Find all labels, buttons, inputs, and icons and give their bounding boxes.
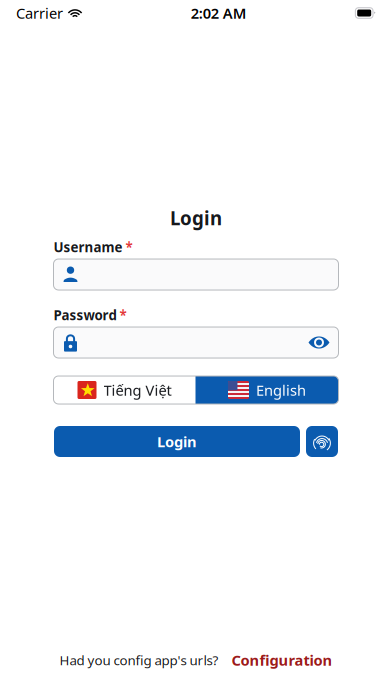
staticText: Username <box>53 238 122 256</box>
button[interactable]: Configuration <box>231 650 332 670</box>
staticText: Login <box>170 206 222 230</box>
staticText: * <box>125 238 132 256</box>
staticText: 2:02 AM <box>191 3 247 23</box>
staticText: Had you config app's urls? <box>59 651 218 669</box>
staticText: * <box>119 306 126 324</box>
staticText: Configuration <box>231 650 332 670</box>
staticText: English <box>256 380 306 400</box>
button[interactable]: English <box>195 376 338 404</box>
staticText: Login <box>157 432 197 451</box>
button[interactable]: Login <box>54 426 300 457</box>
staticText: Password <box>53 306 116 324</box>
staticText: Carrier <box>16 3 63 23</box>
staticText: Tiếng Việt <box>103 380 171 400</box>
button[interactable]: Sign in with fingerprint <box>306 426 338 457</box>
button[interactable]: Tiếng Việt <box>53 376 195 404</box>
